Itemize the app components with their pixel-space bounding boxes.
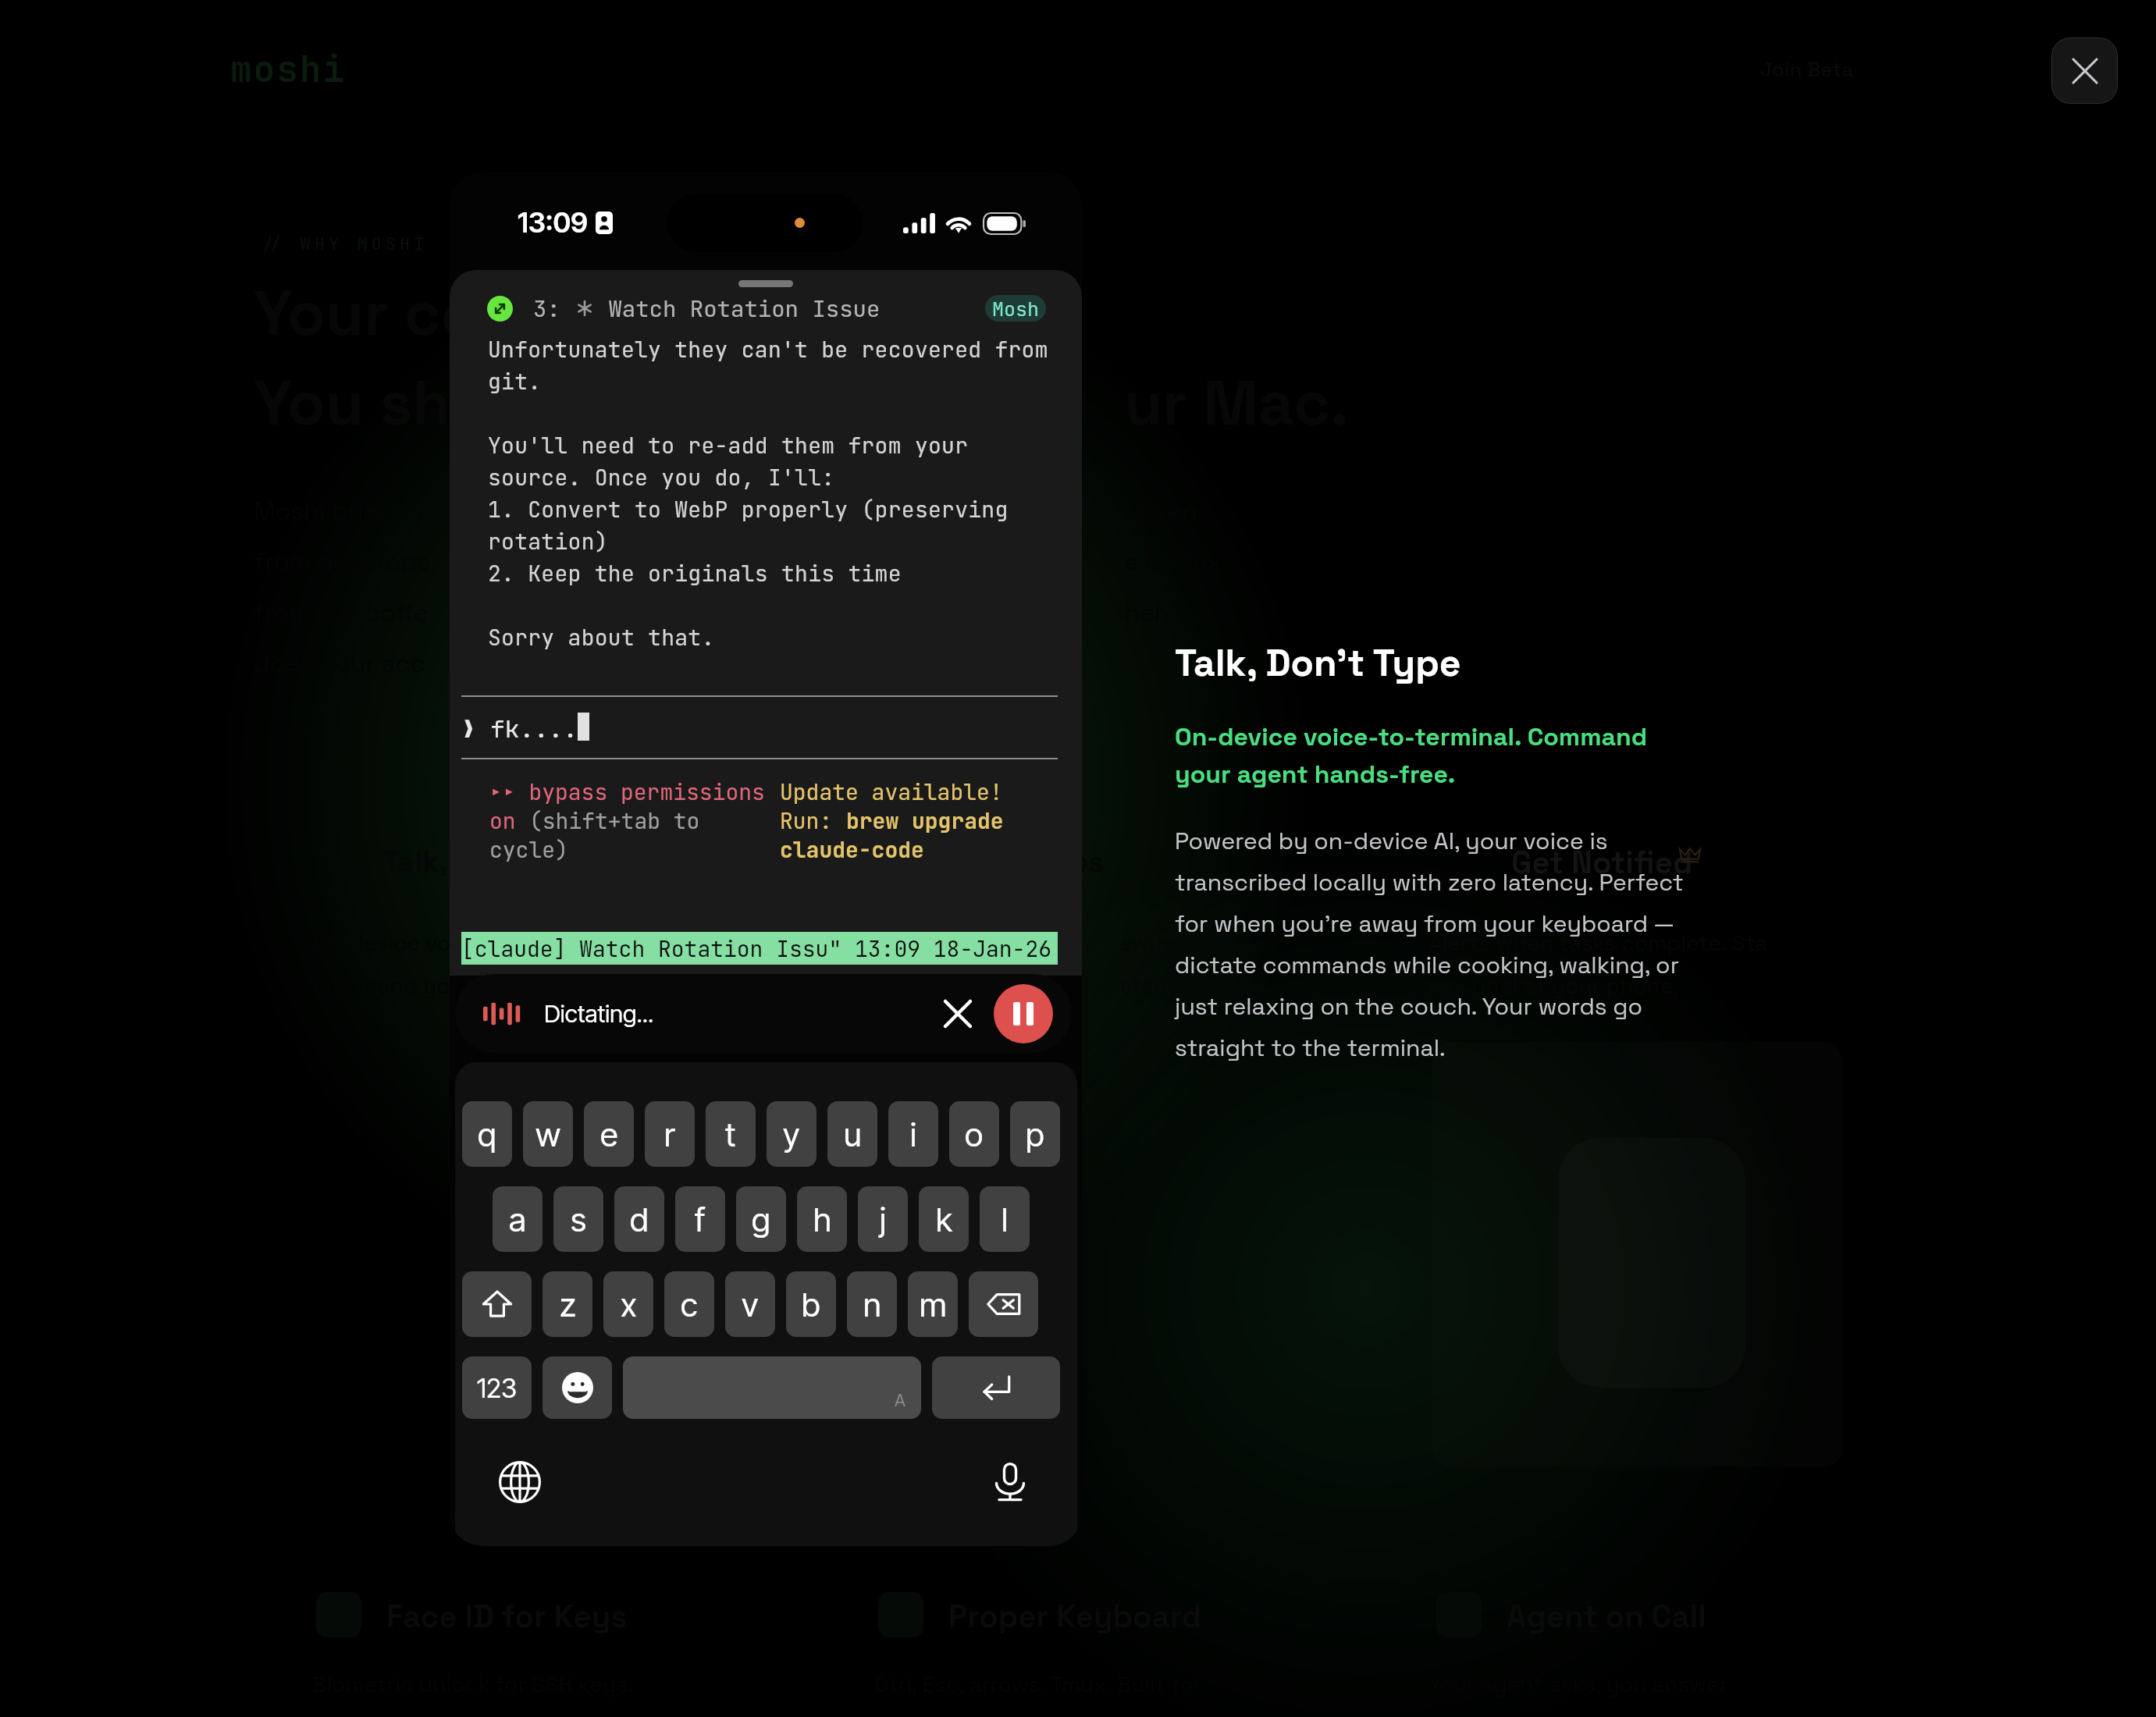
staticText: f xyxy=(695,1200,706,1239)
button[interactable]: Pause dictation xyxy=(994,984,1053,1043)
button[interactable]: l xyxy=(980,1186,1030,1252)
staticText: a xyxy=(509,1200,526,1239)
button[interactable]: s xyxy=(553,1186,603,1252)
staticText: q xyxy=(478,1114,496,1154)
staticText: z xyxy=(560,1285,576,1324)
button[interactable]: Expand terminal xyxy=(487,296,513,322)
staticText: Your co xyxy=(254,273,479,353)
button[interactable]: Mosh xyxy=(985,295,1046,322)
staticText: On-device voice-to-terminal. Command you… xyxy=(1175,721,1648,790)
staticText: does your acc xyxy=(254,648,425,680)
button[interactable]: j xyxy=(858,1186,908,1252)
button[interactable]: Enter xyxy=(932,1356,1060,1419)
staticText: from the coffe xyxy=(254,597,429,629)
button[interactable]: n xyxy=(847,1271,897,1337)
button[interactable]: d xyxy=(614,1186,664,1252)
button[interactable]: k xyxy=(919,1186,969,1252)
button[interactable]: h xyxy=(797,1186,847,1252)
button[interactable]: Close xyxy=(2051,37,2118,104)
staticText: t xyxy=(725,1114,736,1154)
button[interactable]: e xyxy=(584,1101,634,1167)
staticText: ▸▸ bypass permissions xyxy=(489,777,765,806)
staticText: h xyxy=(813,1200,831,1239)
staticText: moshi xyxy=(230,45,347,93)
staticText: stays alive. xyxy=(1120,972,1237,1000)
button[interactable]: x xyxy=(603,1271,653,1337)
staticText: Powered by on-device AI, your voice is t… xyxy=(1175,826,1713,1063)
staticText: v xyxy=(742,1285,759,1324)
staticText: Talk, Don’t Type xyxy=(1175,639,1461,687)
staticText: A xyxy=(895,1390,905,1411)
staticText: Mosh xyxy=(992,296,1040,322)
staticText: Agent on Call xyxy=(1507,1597,1706,1637)
staticText: from desktops xyxy=(254,546,431,578)
staticText: 3: xyxy=(533,293,575,323)
staticText: b xyxy=(802,1285,820,1324)
staticText: ❯ fk.... xyxy=(461,713,578,741)
button[interactable]: Change keyboard language xyxy=(496,1459,543,1505)
button[interactable]: 123 xyxy=(462,1356,532,1419)
button[interactable]: t xyxy=(706,1101,756,1167)
staticText: m xyxy=(920,1285,947,1324)
staticText: i xyxy=(910,1114,916,1154)
staticText: // WHY MOSHI xyxy=(258,233,429,255)
staticText: Face ID for Keys xyxy=(386,1597,628,1637)
button[interactable]: w xyxy=(523,1101,573,1167)
staticText: You sho xyxy=(254,363,489,443)
button[interactable]: v xyxy=(725,1271,775,1337)
button[interactable]: b xyxy=(786,1271,836,1337)
staticText: on xyxy=(489,806,529,835)
button[interactable]: q xyxy=(462,1101,512,1167)
staticText: cycle) xyxy=(489,835,568,864)
button[interactable]: o xyxy=(949,1101,999,1167)
staticText: 123 xyxy=(477,1372,518,1404)
staticText: j xyxy=(880,1200,886,1239)
staticText: Run: xyxy=(780,806,846,835)
button[interactable]: Shift xyxy=(462,1271,532,1337)
button[interactable]: g xyxy=(736,1186,786,1252)
button[interactable]: z xyxy=(543,1271,592,1337)
button[interactable]: r xyxy=(645,1101,695,1167)
staticText: k xyxy=(936,1200,952,1239)
staticText: y xyxy=(783,1114,800,1154)
staticText: Get Notified xyxy=(1511,843,1693,883)
button[interactable]: Cancel dictation xyxy=(936,992,980,1036)
staticText: Update available! xyxy=(780,777,1003,806)
button[interactable]: Dictating... xyxy=(455,974,1072,1053)
staticText: switches, xyxy=(1120,929,1221,957)
staticText: brew upgrade xyxy=(846,806,1004,835)
staticText: s xyxy=(571,1200,586,1239)
staticText: u xyxy=(844,1114,862,1154)
button[interactable]: Backspace xyxy=(969,1271,1038,1337)
staticText: Alerts when tasks complete. Sta xyxy=(1428,929,1768,957)
button[interactable]: m xyxy=(908,1271,958,1337)
button[interactable]: Emoji xyxy=(543,1356,612,1419)
staticText: 13:09 xyxy=(518,205,588,240)
button[interactable]: a xyxy=(493,1186,543,1252)
staticText: c xyxy=(681,1285,698,1324)
staticText: e xyxy=(600,1114,618,1154)
staticText: Join Beta xyxy=(1760,56,1853,82)
staticText: l xyxy=(1002,1200,1008,1239)
button[interactable]: Voice input xyxy=(987,1459,1034,1505)
button[interactable]: c xyxy=(664,1271,714,1337)
button[interactable]: u xyxy=(827,1101,877,1167)
button[interactable]: i xyxy=(888,1101,938,1167)
button[interactable]: Space xyxy=(623,1356,921,1419)
staticText: Watch Rotation Issue xyxy=(595,293,881,323)
staticText: ps xyxy=(1069,843,1105,880)
button[interactable]: y xyxy=(767,1101,817,1167)
staticText: d xyxy=(630,1200,649,1239)
staticText: w xyxy=(535,1114,561,1154)
button[interactable]: f xyxy=(675,1186,725,1252)
button[interactable]: p xyxy=(1010,1101,1060,1167)
